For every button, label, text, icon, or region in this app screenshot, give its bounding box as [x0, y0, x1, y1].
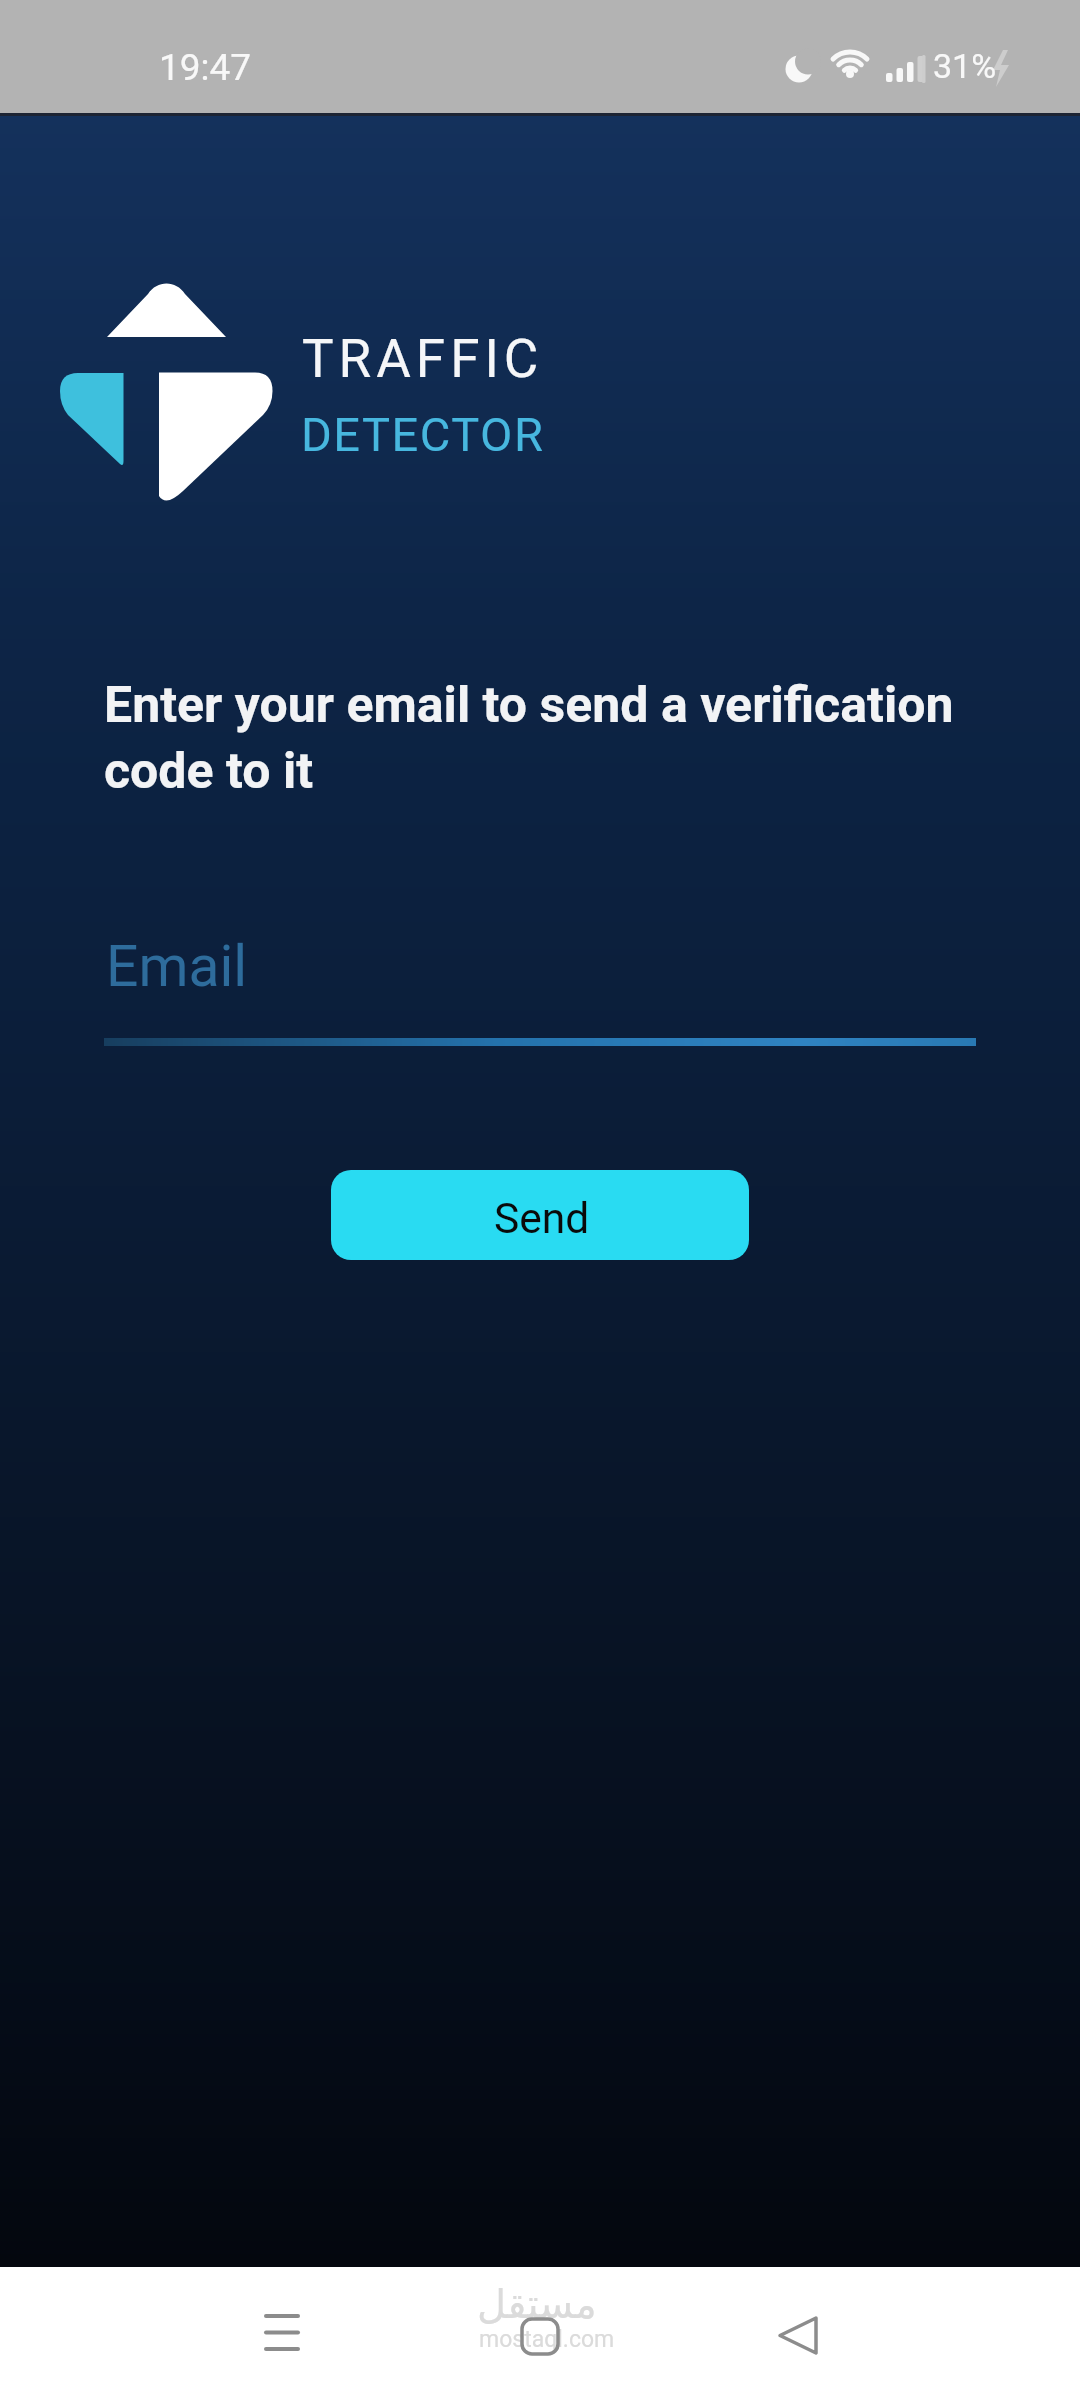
staticText: DETECTOR	[301, 407, 545, 462]
staticText: 19:47	[159, 46, 252, 89]
staticText: 31%	[933, 46, 997, 86]
staticText: Send	[494, 1194, 590, 1244]
staticText: mostaql.com	[479, 2326, 615, 2353]
button[interactable]: Email	[104, 903, 976, 1048]
staticText: مستقل	[477, 2281, 597, 2328]
staticText: Email	[106, 933, 248, 1000]
button[interactable]	[504, 2299, 576, 2371]
button[interactable]	[246, 2299, 318, 2371]
button[interactable]: Send	[331, 1170, 749, 1260]
staticText: Enter your email to send a verification …	[104, 676, 954, 800]
button[interactable]	[762, 2299, 834, 2371]
staticText: TRAFFIC	[302, 328, 544, 390]
